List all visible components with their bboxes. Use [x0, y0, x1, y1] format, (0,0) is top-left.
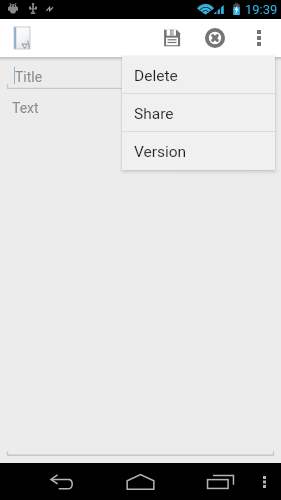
button[interactable]: Notes: [6, 19, 38, 57]
staticText: Version: [134, 143, 187, 161]
button[interactable]: Delete: [122, 56, 275, 93]
button[interactable]: Version: [122, 132, 275, 169]
staticText: 19:39: [245, 2, 278, 17]
button[interactable]: More options: [243, 19, 275, 57]
button[interactable]: Discard: [194, 19, 236, 57]
button[interactable]: Share: [122, 94, 275, 131]
button[interactable]: Recent apps: [189, 463, 251, 500]
button[interactable]: Home: [109, 463, 171, 500]
staticText: Text: [12, 100, 39, 116]
staticText: Share: [134, 105, 174, 123]
button[interactable]: Save: [151, 19, 193, 57]
button[interactable]: Menu: [248, 463, 281, 500]
staticText: Title: [15, 69, 43, 85]
staticText: Delete: [134, 67, 178, 85]
button[interactable]: Back: [30, 463, 92, 500]
